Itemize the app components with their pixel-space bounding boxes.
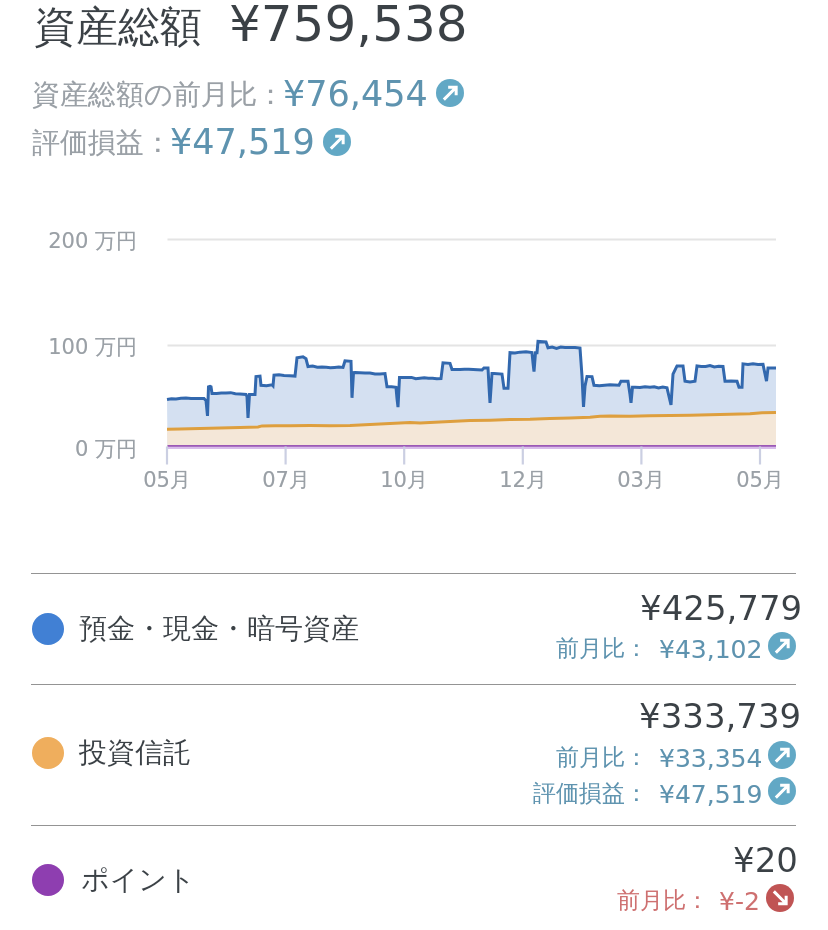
button[interactable] <box>0 574 828 683</box>
staticText: ポイント <box>81 862 196 897</box>
staticText: ¥47,519 <box>659 780 763 809</box>
other: 増加 <box>768 777 796 805</box>
other: 増加 <box>768 741 796 769</box>
staticText: 05月 <box>117 467 217 493</box>
button[interactable]: 増加 <box>436 79 464 107</box>
button[interactable]: 増加 <box>768 632 796 660</box>
staticText: ¥-2 <box>719 887 760 916</box>
staticText: 0 万円 <box>0 436 137 462</box>
staticText: 前月比： <box>556 634 648 663</box>
button[interactable]: 増加 <box>768 777 796 805</box>
staticText: 預金・現金・暗号資産 <box>79 611 359 646</box>
staticText: 12月 <box>473 467 573 493</box>
staticText: 前月比： <box>617 886 709 915</box>
staticText: 資産総額 <box>34 1 202 54</box>
staticText: ¥47,519 <box>170 122 315 163</box>
staticText: 前月比： <box>556 743 648 772</box>
other: 減少 <box>766 884 794 912</box>
button[interactable]: 減少 <box>766 884 794 912</box>
staticText: ¥333,739 <box>639 696 802 736</box>
staticText: 評価損益： <box>32 125 172 160</box>
staticText: ¥76,454 <box>283 74 428 115</box>
button[interactable] <box>28 120 358 160</box>
staticText: 投資信託 <box>79 735 191 770</box>
staticText: ¥759,538 <box>229 0 468 53</box>
staticText: ¥43,102 <box>659 635 763 664</box>
button[interactable] <box>0 685 828 824</box>
staticText: 03月 <box>591 467 691 493</box>
staticText: 05月 <box>710 467 810 493</box>
staticText: 07月 <box>236 467 336 493</box>
button[interactable]: 増加 <box>323 128 351 156</box>
staticText: ¥20 <box>733 840 798 880</box>
other: 増加 <box>436 79 464 107</box>
button[interactable]: 増加 <box>768 741 796 769</box>
staticText: 100 万円 <box>0 334 137 360</box>
staticText: 10月 <box>354 467 454 493</box>
staticText: 評価損益： <box>533 779 648 808</box>
other: 増加 <box>323 128 351 156</box>
staticText: 200 万円 <box>0 228 137 254</box>
button[interactable] <box>0 826 828 930</box>
staticText: ¥33,354 <box>659 744 763 773</box>
staticText: ¥425,779 <box>640 588 803 628</box>
button[interactable] <box>28 72 448 112</box>
staticText: 資産総額の前月比： <box>32 77 285 112</box>
other: 増加 <box>768 632 796 660</box>
